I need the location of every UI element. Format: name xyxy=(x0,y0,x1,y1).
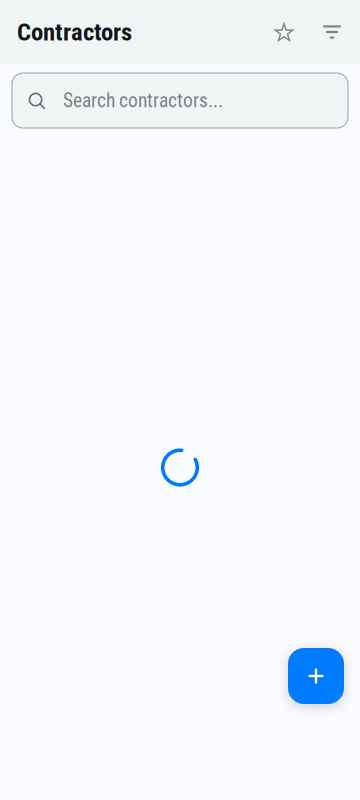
button[interactable]: Filter xyxy=(308,8,356,56)
button[interactable]: Favorites xyxy=(260,8,308,56)
button[interactable]: Search contractors... xyxy=(12,73,348,128)
staticText: Search contractors... xyxy=(63,89,223,112)
button[interactable]: Add contractor xyxy=(288,648,344,704)
staticText: Contractors xyxy=(17,17,132,46)
